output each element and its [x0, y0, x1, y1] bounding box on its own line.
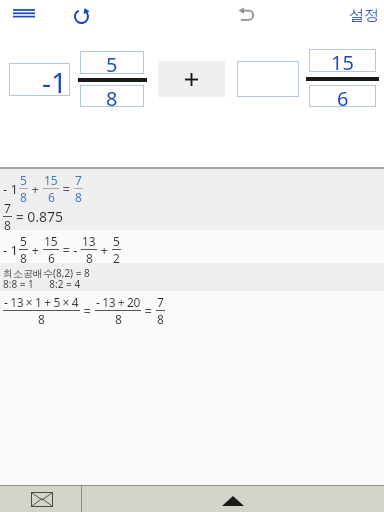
- staticText: - 13 × 1 + 5 × 4: [4, 294, 79, 310]
- staticText: - 13 + 20: [96, 294, 140, 310]
- staticText: 8: [4, 217, 11, 233]
- button[interactable]: 15: [309, 49, 376, 72]
- staticText: 2: [113, 250, 120, 266]
- button[interactable]: -1: [9, 63, 70, 96]
- staticText: 15: [44, 233, 58, 249]
- staticText: 8: [157, 311, 164, 327]
- button[interactable]: 5: [80, 51, 144, 74]
- button[interactable]: [73, 7, 91, 25]
- staticText: 13: [82, 233, 96, 249]
- staticText: 8: [38, 311, 45, 327]
- staticText: =: [59, 180, 74, 198]
- staticText: 15: [44, 172, 58, 188]
- button[interactable]: [238, 6, 255, 21]
- staticText: = -: [59, 241, 81, 259]
- staticText: - 1: [3, 241, 19, 259]
- staticText: 6: [48, 189, 55, 205]
- staticText: 8: [20, 250, 27, 266]
- staticText: 최소공배수(8,2) = 8: [3, 266, 90, 280]
- staticText: 8: [75, 189, 82, 205]
- staticText: = 0.875: [12, 207, 64, 226]
- staticText: 5: [106, 51, 118, 74]
- staticText: 8:8 = 1 8:2 = 4: [3, 277, 81, 291]
- button[interactable]: 6: [309, 85, 376, 107]
- staticText: - 1: [3, 180, 19, 198]
- button[interactable]: 설정: [349, 6, 379, 25]
- staticText: +: [28, 241, 43, 259]
- staticText: =: [80, 302, 95, 320]
- staticText: 6: [337, 85, 349, 107]
- staticText: 6: [48, 250, 55, 266]
- staticText: 5: [20, 172, 27, 188]
- button[interactable]: [237, 61, 299, 97]
- staticText: =: [141, 302, 156, 320]
- button[interactable]: [0, 485, 82, 512]
- staticText: 5: [113, 233, 120, 249]
- staticText: 15: [331, 49, 354, 72]
- button[interactable]: [158, 61, 225, 97]
- staticText: 7: [75, 172, 82, 188]
- staticText: 8: [86, 250, 93, 266]
- staticText: -1: [42, 63, 68, 96]
- button[interactable]: [13, 9, 35, 19]
- staticText: +: [28, 180, 43, 198]
- staticText: 8: [106, 85, 118, 107]
- button[interactable]: [82, 485, 384, 512]
- staticText: 8: [115, 311, 122, 327]
- staticText: 7: [157, 294, 164, 310]
- staticText: +: [97, 241, 112, 259]
- staticText: 8: [20, 189, 27, 205]
- button[interactable]: 8: [80, 85, 144, 107]
- staticText: 7: [4, 200, 11, 216]
- staticText: 설정: [349, 6, 379, 25]
- staticText: 5: [20, 233, 27, 249]
